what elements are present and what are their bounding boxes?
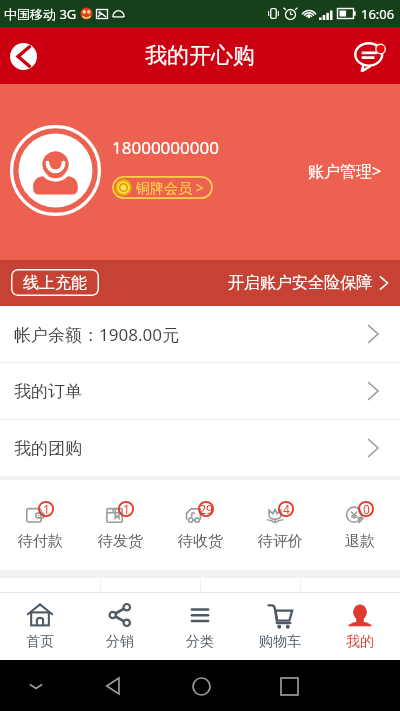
staticText: 4 xyxy=(283,501,290,517)
staticText: 账户管理> xyxy=(308,160,382,182)
button[interactable]: 我的 xyxy=(320,592,400,660)
button[interactable]: Messages xyxy=(352,38,388,74)
button[interactable]: 1 xyxy=(80,480,160,570)
button[interactable]: 4 xyxy=(240,480,320,570)
button[interactable]: Back xyxy=(96,669,130,703)
button[interactable]: 0 xyxy=(320,480,400,570)
staticText: 我的团购 xyxy=(14,438,82,459)
staticText: 分销 xyxy=(106,633,134,651)
staticText: 18000000000 xyxy=(112,136,219,159)
staticText: 待付款 xyxy=(18,532,63,551)
button[interactable]: 分类 xyxy=(160,592,240,660)
staticText: 1 xyxy=(43,501,50,517)
button[interactable]: 我的团购 xyxy=(0,420,400,476)
button[interactable]: Avatar xyxy=(10,125,101,216)
staticText: 购物车 xyxy=(259,633,301,651)
staticText: 1 xyxy=(123,501,130,517)
staticText: 开启账户安全险保障 xyxy=(228,273,372,293)
staticText: 铜牌会员 > xyxy=(136,178,204,197)
staticText: 分类 xyxy=(186,633,214,651)
button[interactable]: 我的订单 xyxy=(0,363,400,419)
staticText: 16:06 xyxy=(361,5,395,23)
button[interactable]: 账户管理> xyxy=(304,156,386,186)
button[interactable]: Recents xyxy=(272,669,306,703)
button[interactable]: 购物车 xyxy=(240,592,320,660)
staticText: 我的开心购 xyxy=(145,42,255,70)
button[interactable]: 帐户余额：1908.00元 xyxy=(0,306,400,362)
staticText: 首页 xyxy=(26,633,54,651)
staticText: 退款 xyxy=(345,532,375,551)
button[interactable]: 开启账户安全险保障 xyxy=(224,269,392,297)
button[interactable]: 铜牌会员 > xyxy=(112,176,213,199)
button[interactable]: 线上充能 xyxy=(11,269,99,296)
staticText: 线上充能 xyxy=(23,273,87,293)
staticText: 29 xyxy=(199,501,213,517)
button[interactable]: Home xyxy=(184,669,218,703)
button[interactable]: Hide keyboard xyxy=(20,670,52,702)
button[interactable]: 首页 xyxy=(0,592,80,660)
staticText: 待评价 xyxy=(258,532,303,551)
staticText: 我的订单 xyxy=(14,381,82,402)
staticText: 我的 xyxy=(346,633,374,651)
button[interactable]: Back xyxy=(5,38,41,74)
staticText: 待发货 xyxy=(98,532,143,551)
staticText: 中国移动 3G xyxy=(4,5,77,23)
staticText: 0 xyxy=(363,501,370,517)
button[interactable]: 29 xyxy=(160,480,240,570)
button[interactable]: 1 xyxy=(0,480,80,570)
staticText: 帐户余额：1908.00元 xyxy=(14,323,179,346)
button[interactable]: 分销 xyxy=(80,592,160,660)
staticText: 待收货 xyxy=(178,532,223,551)
